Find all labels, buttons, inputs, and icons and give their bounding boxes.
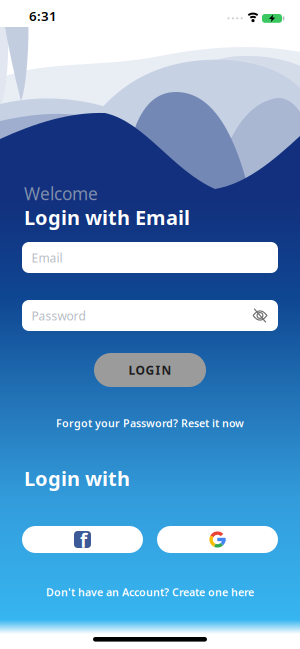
staticText: Don't have an Account? Create one here [46, 585, 254, 599]
staticText: Welcome [24, 182, 98, 205]
button[interactable]: LOGIN [94, 353, 206, 387]
staticText: f [80, 528, 87, 553]
staticText: Email [31, 250, 62, 266]
button[interactable]: Email [22, 242, 278, 273]
staticText: Login with Email [24, 204, 190, 231]
staticText: Login with [24, 465, 130, 492]
button[interactable] [157, 526, 300, 649]
staticText: Password [31, 308, 85, 324]
button[interactable]: Don't have an Account? Create one here [0, 585, 300, 599]
staticText: 6:31 [29, 7, 57, 25]
button[interactable]: f [22, 526, 143, 553]
button[interactable]: Password [22, 300, 300, 649]
button[interactable]: Forgot your Password? Reset it now [0, 416, 300, 430]
staticText: LOGIN [128, 362, 171, 378]
staticText: Forgot your Password? Reset it now [56, 416, 244, 430]
